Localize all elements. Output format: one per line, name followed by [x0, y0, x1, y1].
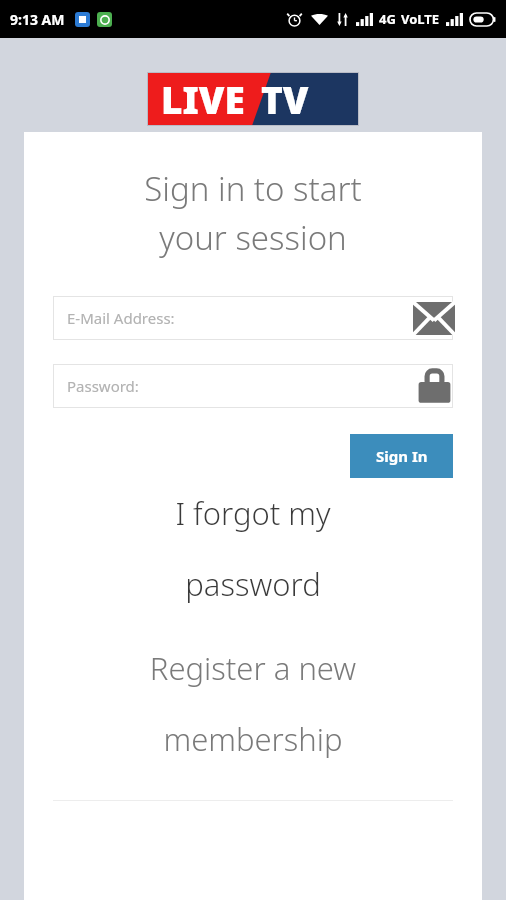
button[interactable]: Password:	[53, 364, 453, 408]
staticText: VoLTE	[401, 10, 440, 28]
staticText: LIVE	[161, 74, 245, 124]
staticText: Sign In	[376, 446, 428, 466]
staticText: E-Mail Address:	[67, 308, 175, 328]
other: Password	[411, 364, 457, 408]
staticText: 4G	[379, 10, 396, 28]
staticText: 9:13 AM	[10, 10, 65, 29]
button[interactable]: I forgot my password	[53, 490, 453, 607]
button[interactable]: Register a new membership	[53, 645, 453, 762]
staticText: TV	[261, 74, 309, 124]
staticText: Sign in to start your session	[53, 166, 453, 260]
button[interactable]: E-Mail Address:	[53, 296, 453, 340]
button[interactable]: Sign In	[350, 434, 453, 478]
staticText: Password:	[67, 376, 139, 396]
other: E-Mail	[411, 296, 457, 340]
